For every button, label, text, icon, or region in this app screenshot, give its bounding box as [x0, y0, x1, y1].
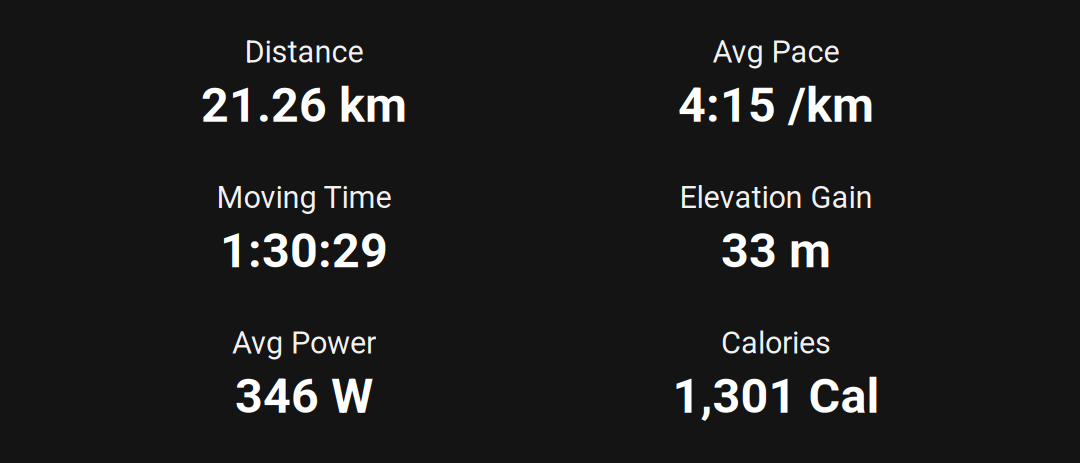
staticText: 346 W — [235, 368, 373, 425]
button[interactable]: Calories — [540, 325, 1012, 463]
staticText: Calories — [721, 325, 831, 361]
staticText: 21.26 km — [201, 77, 407, 134]
staticText: Avg Pace — [712, 34, 839, 70]
staticText: 4:15 /km — [678, 77, 874, 134]
staticText: Elevation Gain — [679, 179, 872, 215]
staticText: Avg Power — [232, 325, 376, 361]
button[interactable]: Moving Time — [68, 179, 540, 325]
staticText: Distance — [244, 34, 363, 70]
button[interactable]: Distance — [68, 34, 540, 179]
button[interactable]: Avg Pace — [540, 34, 1012, 179]
staticText: 33 m — [721, 222, 831, 279]
button[interactable]: Avg Power — [68, 325, 540, 463]
staticText: 1,301 Cal — [672, 368, 879, 425]
staticText: 1:30:29 — [220, 222, 388, 279]
button[interactable]: Elevation Gain — [540, 179, 1012, 325]
staticText: Moving Time — [216, 179, 391, 215]
